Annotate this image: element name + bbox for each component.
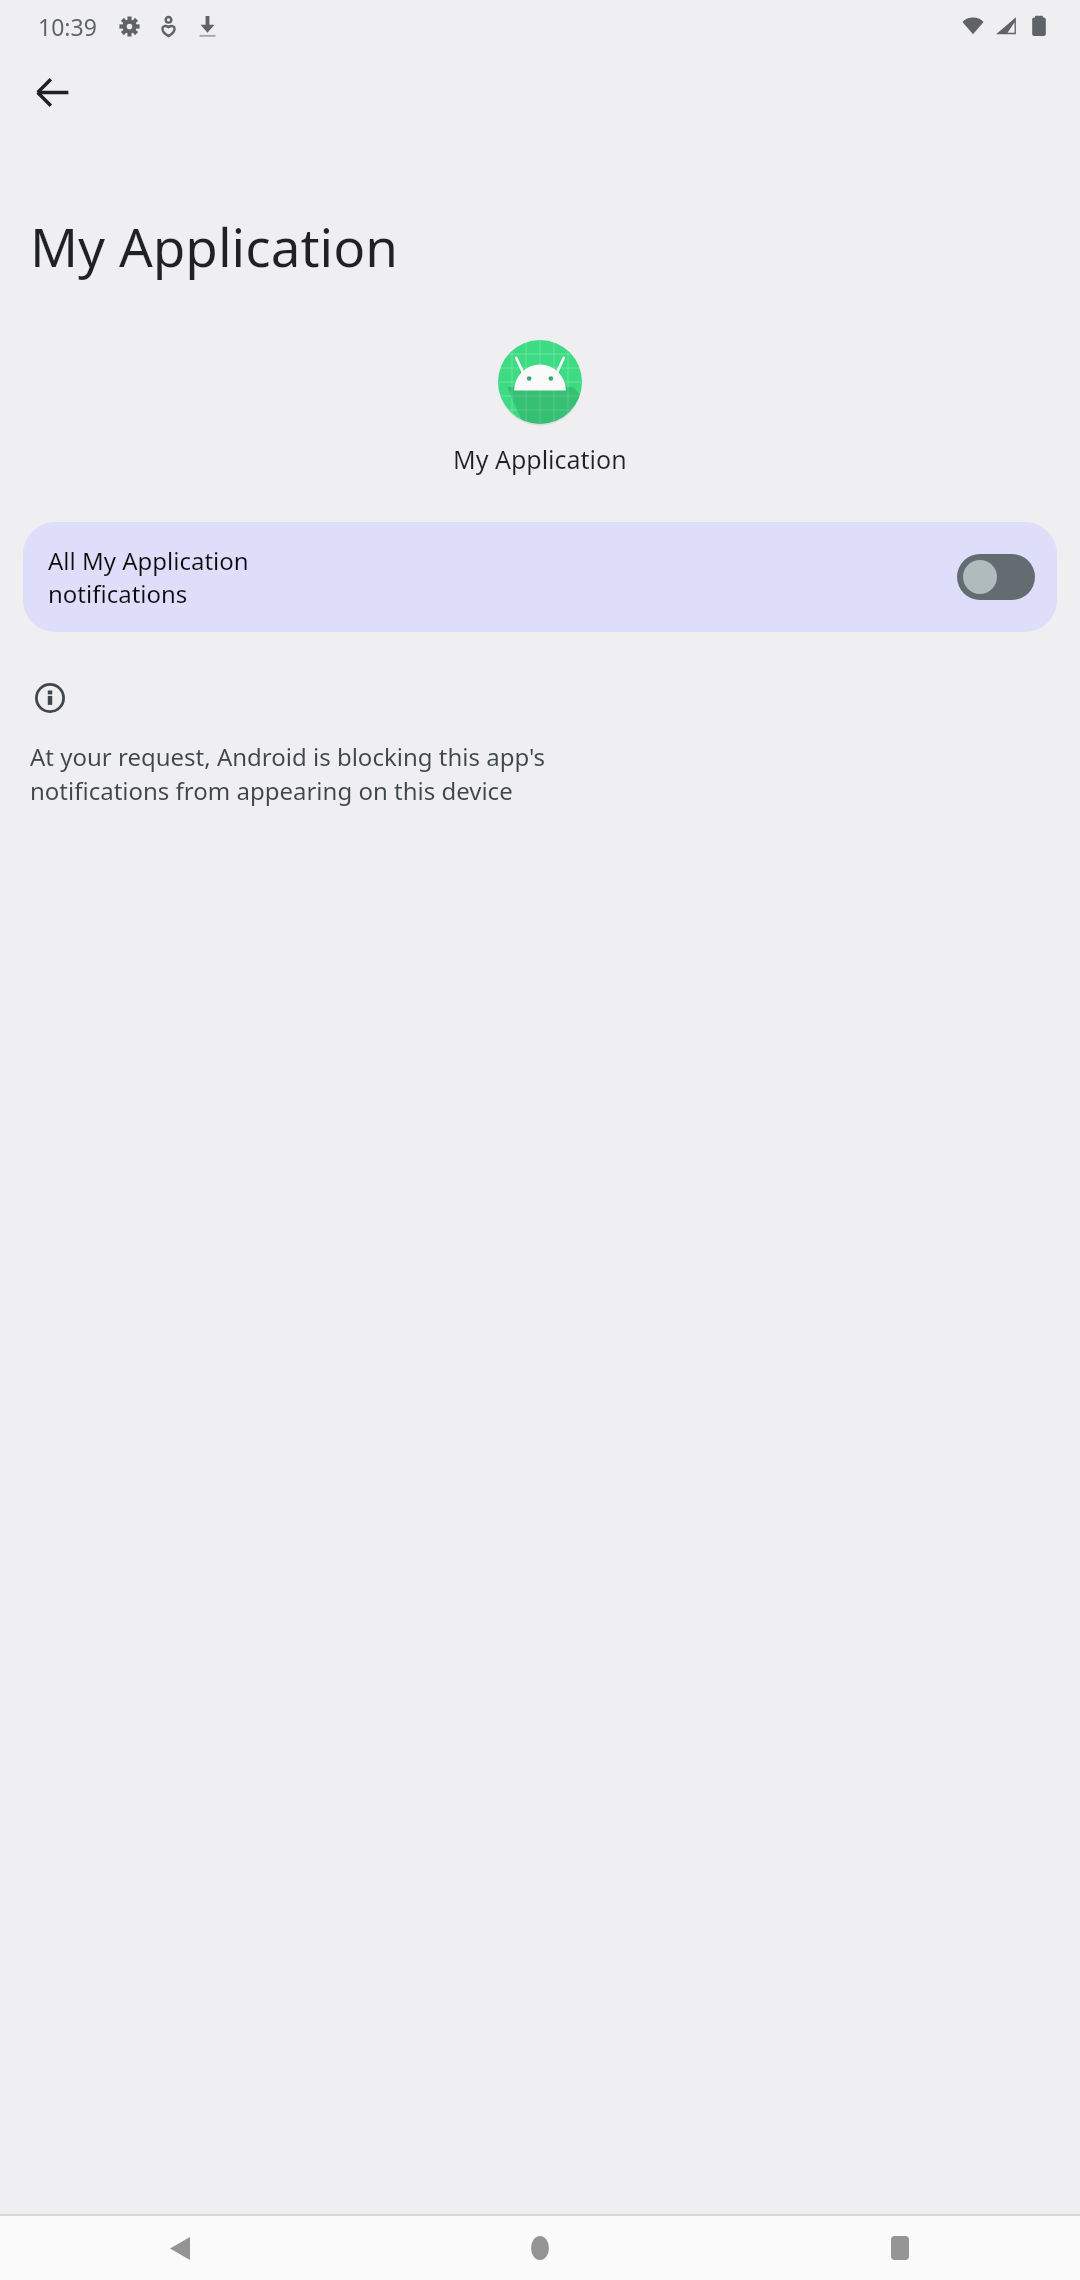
button[interactable]: Back	[0, 2216, 360, 2280]
other: Information	[26, 674, 74, 722]
staticText: All My Application notifications	[48, 544, 945, 610]
button[interactable]: Home	[360, 2216, 720, 2280]
staticText: My Application	[453, 442, 627, 476]
button[interactable]: All My Application notifications	[23, 522, 1057, 632]
staticText: 10:39	[38, 11, 97, 42]
staticText: My Application	[30, 210, 399, 282]
button[interactable]: Navigate up	[20, 60, 84, 124]
staticText: At your request, Android is blocking thi…	[30, 740, 546, 808]
button[interactable]: Toggle all notifications	[957, 554, 1035, 600]
button[interactable]: Recent apps	[720, 2216, 1080, 2280]
